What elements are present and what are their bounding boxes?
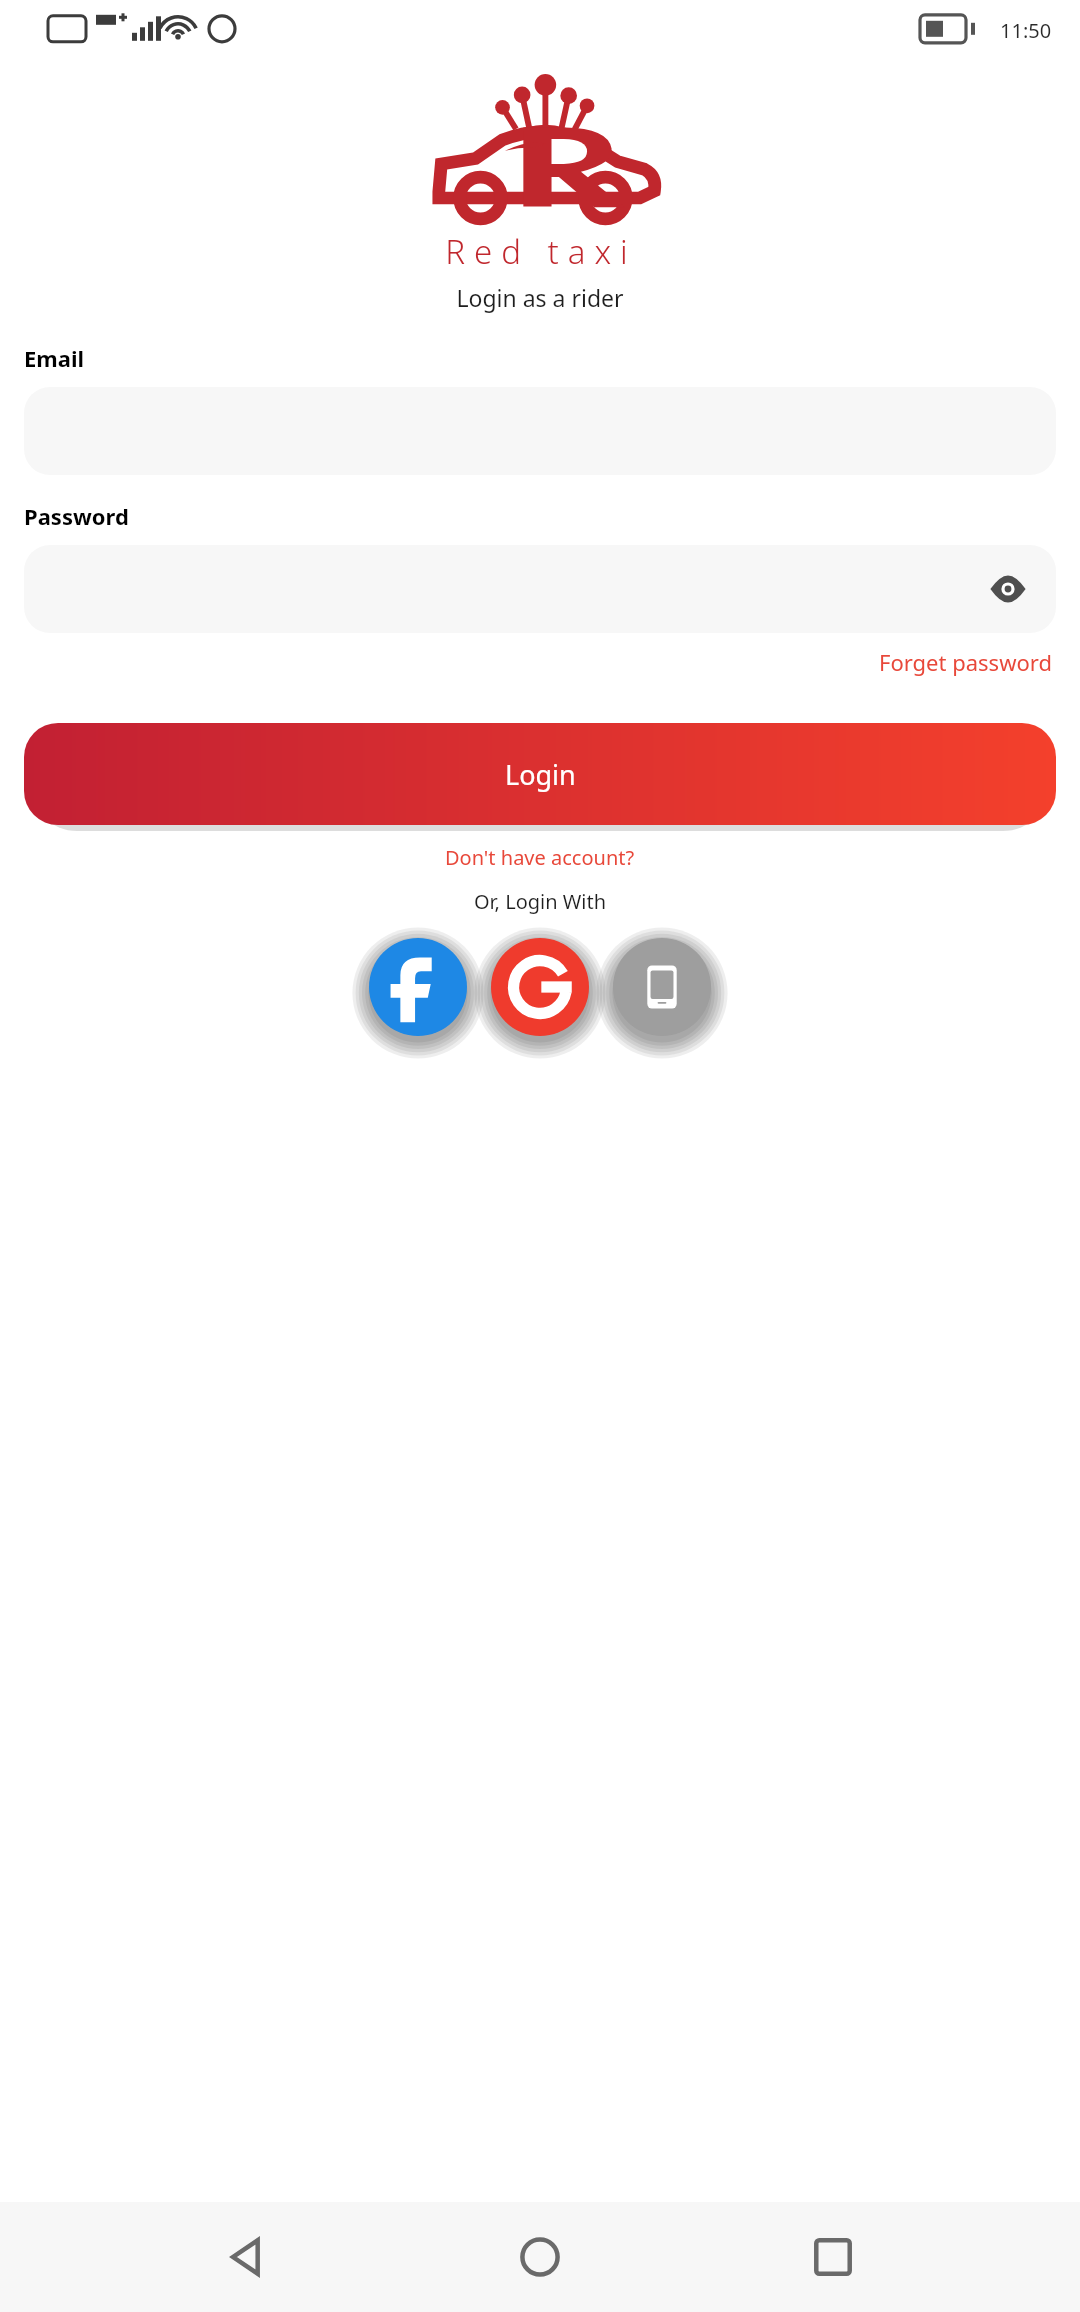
staticText: Login — [505, 756, 576, 793]
button[interactable]: Login with Google — [491, 938, 589, 1036]
button[interactable]: Login with phone number — [613, 938, 711, 1036]
staticText: Don't have account? — [445, 844, 635, 871]
staticText: 11:50 — [1000, 17, 1052, 44]
staticText: Email — [24, 343, 85, 373]
staticText: Red taxi — [445, 229, 637, 274]
button[interactable]: Back — [203, 2212, 293, 2302]
button[interactable]: Show password — [982, 563, 1034, 615]
button[interactable]: Show password — [24, 545, 1056, 633]
button[interactable]: Recent apps — [788, 2212, 878, 2302]
button[interactable]: Don't have account? — [439, 839, 641, 876]
button[interactable]: Login — [24, 723, 1056, 825]
button[interactable]: Home — [495, 2212, 585, 2302]
staticText: Or, Login With — [24, 888, 1056, 915]
staticText: Forget password — [879, 647, 1052, 677]
staticText: Login as a rider — [0, 282, 1080, 313]
button[interactable]: Login with Facebook — [369, 938, 467, 1036]
staticText: Password — [24, 501, 129, 531]
button[interactable]: Forget password — [875, 641, 1056, 683]
